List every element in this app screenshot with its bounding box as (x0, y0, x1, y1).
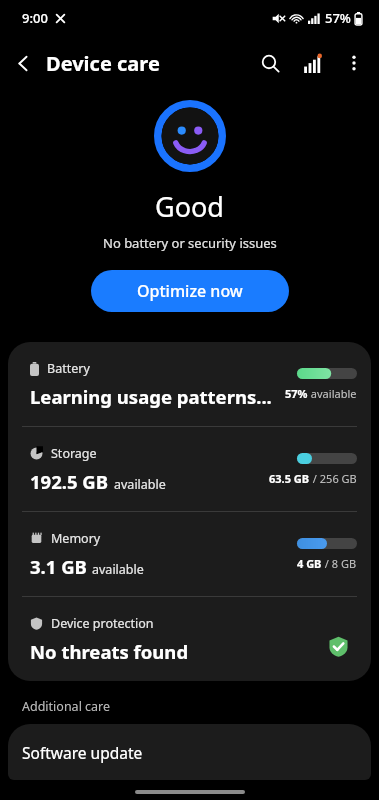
staticText: Good (155, 188, 224, 225)
button[interactable]: Device protection (8, 597, 371, 681)
staticText: 57% (285, 386, 308, 401)
staticText: Storage (51, 445, 97, 462)
button[interactable]: Back (0, 40, 46, 86)
staticText: 3.1 GB (30, 554, 87, 579)
button[interactable]: Storage (8, 427, 371, 511)
button[interactable]: Search (249, 42, 291, 84)
staticText: available (308, 386, 357, 401)
staticText: / 256 GB (310, 471, 357, 486)
staticText: 63.5 GB (269, 471, 310, 486)
button[interactable]: Battery (8, 342, 371, 426)
staticText: Memory (51, 530, 101, 547)
staticText: No threats found (30, 639, 189, 664)
staticText: available (92, 561, 144, 578)
staticText: Device care (46, 50, 160, 77)
staticText: 4 GB (297, 556, 322, 571)
staticText: available (114, 476, 166, 493)
staticText: / 8 GB (322, 556, 357, 571)
staticText: Battery (47, 360, 90, 377)
staticText: Device protection (51, 615, 154, 632)
staticText: Software update (22, 742, 143, 763)
staticText: Learning usage patterns... (30, 384, 272, 409)
staticText: No battery or security issues (103, 234, 277, 252)
staticText: 57% (325, 9, 351, 27)
staticText: 192.5 GB (30, 469, 109, 494)
button[interactable]: Software update (8, 724, 371, 780)
button[interactable]: Optimize now (91, 270, 289, 312)
staticText: 9:00 (22, 9, 48, 27)
button[interactable]: More options (333, 42, 375, 84)
button[interactable]: Usage statistics (291, 42, 333, 84)
staticText: Optimize now (137, 280, 243, 302)
button[interactable]: Memory (8, 512, 371, 596)
staticText: Additional care (22, 698, 111, 715)
